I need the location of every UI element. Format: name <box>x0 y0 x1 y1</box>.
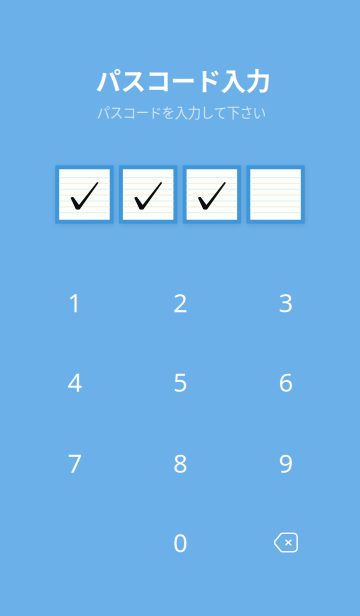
staticText: 9 <box>278 446 292 480</box>
button[interactable]: 8 <box>130 426 230 500</box>
button[interactable]: Delete <box>235 505 335 579</box>
staticText: 3 <box>278 286 292 319</box>
staticText: 0 <box>173 526 187 559</box>
staticText: 2 <box>173 286 187 319</box>
staticText: 5 <box>173 365 187 399</box>
staticText: 4 <box>67 365 81 399</box>
staticText: パスコード入力 <box>95 61 270 98</box>
staticText: 1 <box>67 286 81 319</box>
button[interactable]: 2 <box>130 265 230 339</box>
button[interactable]: 3 <box>235 265 335 339</box>
button[interactable]: 7 <box>24 426 124 500</box>
staticText: 6 <box>278 365 292 399</box>
staticText: 7 <box>67 446 81 480</box>
button[interactable]: 6 <box>235 345 335 419</box>
button[interactable]: 0 <box>130 505 230 579</box>
button[interactable]: 5 <box>130 345 230 419</box>
button[interactable]: 4 <box>24 345 124 419</box>
button[interactable]: 1 <box>24 265 124 339</box>
staticText: パスコードを入力して下さい <box>96 102 265 122</box>
staticText: 8 <box>173 446 187 480</box>
button[interactable]: 9 <box>235 426 335 500</box>
